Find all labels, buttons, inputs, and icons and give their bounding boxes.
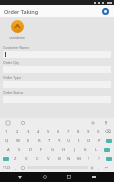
button[interactable]: O	[84, 136, 94, 145]
button[interactable]: ,	[12, 163, 19, 172]
button[interactable]: ⌫	[103, 127, 113, 136]
button[interactable]: T	[44, 136, 54, 145]
button[interactable]: 1	[1, 127, 12, 136]
staticText: E	[27, 138, 30, 144]
button[interactable]: 6	[53, 127, 63, 136]
button[interactable]: Profile	[11, 20, 24, 33]
button[interactable]: B	[54, 154, 64, 163]
staticText: 3	[27, 129, 30, 135]
button[interactable]: E	[23, 136, 34, 145]
staticText: .	[98, 165, 100, 171]
staticText: A	[7, 147, 10, 153]
button[interactable]: !	[84, 154, 94, 163]
button[interactable]: 7	[63, 127, 73, 136]
staticText: I	[78, 138, 80, 144]
button[interactable]: P	[94, 136, 104, 145]
staticText: Order Taking	[4, 8, 39, 15]
button[interactable]: Emoji	[19, 163, 27, 172]
staticText: B	[58, 156, 61, 162]
button[interactable]: Menu	[90, 173, 98, 181]
button[interactable]: Z	[10, 154, 21, 163]
button[interactable]: 8	[73, 127, 83, 136]
staticText: X	[25, 156, 28, 162]
button[interactable]: ↵	[102, 163, 112, 172]
button[interactable]: I	[74, 136, 84, 145]
button[interactable]: Recents	[65, 173, 73, 181]
button[interactable]: Q	[1, 136, 12, 145]
staticText: ⌫	[105, 129, 111, 134]
button[interactable]: Enter	[102, 145, 111, 154]
staticText: T	[48, 138, 51, 144]
button[interactable]: ?	[94, 154, 104, 163]
staticText: O	[87, 138, 91, 144]
staticText: 7	[67, 129, 70, 135]
button[interactable]: A	[3, 145, 14, 154]
staticText: 6	[57, 129, 60, 135]
staticText: Order Type	[3, 75, 21, 80]
button[interactable]: Sticker	[20, 120, 26, 126]
button[interactable]: 4	[33, 127, 43, 136]
staticText: userdemo	[9, 36, 25, 40]
button[interactable]: .	[96, 163, 102, 172]
staticText: R	[38, 138, 41, 144]
staticText: F	[40, 147, 43, 153]
button[interactable]: Order Status	[3, 90, 111, 103]
button[interactable]: W	[12, 136, 23, 145]
staticText: Z	[14, 156, 17, 162]
button[interactable]: K	[80, 145, 91, 154]
button[interactable]: F	[36, 145, 47, 154]
button[interactable]: N	[64, 154, 74, 163]
button[interactable]: Enter	[104, 136, 113, 145]
button[interactable]: 0	[93, 127, 103, 136]
staticText: 9	[87, 129, 90, 135]
staticText: Y	[58, 138, 61, 144]
staticText: 4	[37, 129, 40, 135]
button[interactable]: Sync	[101, 7, 110, 16]
staticText: M	[77, 156, 81, 162]
staticText: 0	[97, 129, 100, 135]
button[interactable]: H	[58, 145, 69, 154]
button[interactable]: ?123	[2, 163, 12, 172]
staticText: P	[98, 138, 101, 144]
staticText: !	[88, 156, 90, 162]
button[interactable]: R	[34, 136, 44, 145]
staticText: G	[51, 147, 55, 153]
button[interactable]: G	[47, 145, 58, 154]
staticText: Order Status	[3, 90, 24, 95]
button[interactable]: V	[43, 154, 54, 163]
button[interactable]: Settings	[88, 163, 96, 172]
button[interactable]: M	[74, 154, 84, 163]
button[interactable]: Order Type	[3, 75, 111, 88]
button[interactable]: Voice input	[103, 120, 109, 126]
staticText: Order Qty	[3, 60, 19, 65]
button[interactable]: D	[25, 145, 36, 154]
button[interactable]: Shift	[1, 154, 10, 163]
button[interactable]: L	[91, 145, 102, 154]
staticText: U	[67, 138, 71, 144]
button[interactable]: Order Qty	[3, 60, 111, 73]
button[interactable]: 9	[83, 127, 93, 136]
button[interactable]: J	[69, 145, 80, 154]
button[interactable]: S	[14, 145, 25, 154]
staticText: D	[29, 147, 33, 153]
button[interactable]: 5	[43, 127, 53, 136]
button[interactable]: Settings	[90, 120, 96, 126]
button[interactable]: 3	[23, 127, 33, 136]
staticText: C	[36, 156, 39, 162]
staticText: ↵	[105, 165, 109, 170]
staticText: H	[62, 147, 66, 153]
button[interactable]: Back	[16, 173, 24, 181]
staticText: ?123	[3, 165, 11, 170]
staticText: J	[74, 147, 76, 153]
button[interactable]: X	[21, 154, 32, 163]
button[interactable]: 2	[12, 127, 23, 136]
button[interactable]: Home	[41, 173, 49, 181]
button[interactable]: Enter	[104, 154, 113, 163]
button[interactable]: Y	[54, 136, 64, 145]
button[interactable]: U	[64, 136, 74, 145]
button[interactable]: C	[32, 154, 43, 163]
button[interactable]: Customer Name	[3, 45, 111, 58]
staticText: W	[16, 138, 20, 144]
button[interactable]: Clipboard	[5, 120, 11, 126]
